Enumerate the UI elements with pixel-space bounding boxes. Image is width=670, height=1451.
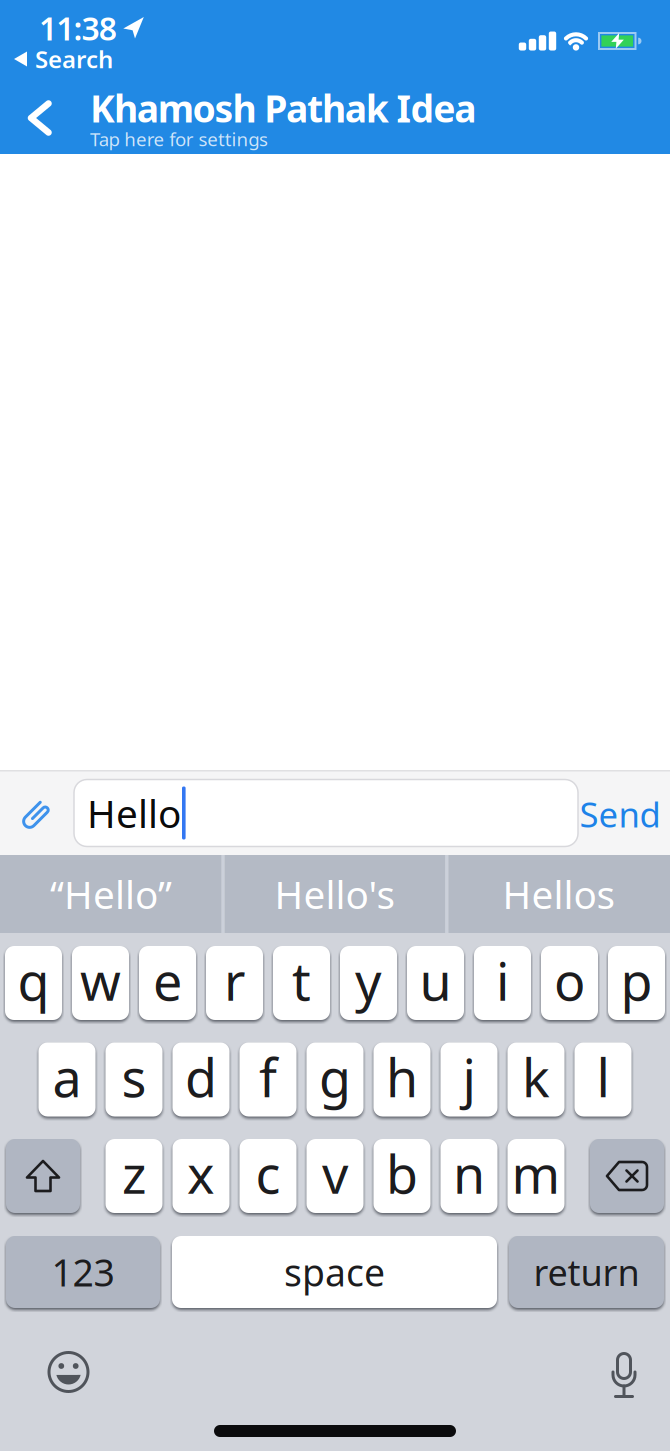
- button[interactable]: l: [574, 1042, 631, 1116]
- button[interactable]: s: [105, 1042, 162, 1116]
- button[interactable]: space: [172, 1236, 497, 1308]
- button[interactable]: [27, 100, 53, 136]
- button[interactable]: k: [507, 1042, 564, 1116]
- button[interactable]: Hello's: [224, 855, 446, 933]
- staticText: b: [386, 1139, 418, 1208]
- button[interactable]: z: [105, 1139, 162, 1213]
- staticText: y: [355, 946, 382, 1015]
- staticText: s: [121, 1042, 146, 1112]
- staticText: 11:38: [39, 7, 117, 49]
- staticText: space: [284, 1247, 385, 1297]
- button[interactable]: b: [373, 1139, 430, 1213]
- button[interactable]: [6, 1139, 80, 1213]
- button[interactable]: w: [72, 946, 129, 1020]
- button[interactable]: q: [5, 946, 62, 1020]
- button[interactable]: d: [172, 1042, 229, 1116]
- button[interactable]: g: [306, 1042, 363, 1116]
- button[interactable]: [607, 1352, 641, 1400]
- staticText: p: [620, 946, 652, 1015]
- staticText: d: [185, 1042, 217, 1112]
- button[interactable]: h: [373, 1042, 430, 1116]
- staticText: k: [522, 1042, 550, 1112]
- staticText: Khamosh Pathak Idea: [90, 83, 476, 133]
- staticText: a: [52, 1042, 81, 1112]
- button[interactable]: c: [239, 1139, 296, 1213]
- staticText: m: [511, 1139, 560, 1208]
- button[interactable]: Send: [579, 791, 660, 837]
- button[interactable]: v: [306, 1139, 363, 1213]
- staticText: e: [153, 946, 182, 1015]
- staticText: return: [533, 1248, 639, 1296]
- button[interactable]: x: [172, 1139, 229, 1213]
- staticText: “Hello”: [50, 868, 172, 920]
- staticText: z: [122, 1139, 146, 1208]
- staticText: x: [187, 1139, 215, 1208]
- staticText: g: [319, 1042, 351, 1112]
- button[interactable]: Hello: [74, 779, 578, 846]
- staticText: Tap here for settings: [90, 127, 268, 151]
- button[interactable]: a: [38, 1042, 95, 1116]
- staticText: Hello's: [274, 868, 395, 920]
- staticText: t: [292, 946, 311, 1015]
- button[interactable]: n: [440, 1139, 497, 1213]
- button[interactable]: Search: [0, 46, 670, 72]
- button[interactable]: “Hello”: [0, 855, 222, 933]
- button[interactable]: r: [206, 946, 263, 1020]
- button[interactable]: Khamosh Pathak Idea: [0, 87, 670, 129]
- button[interactable]: 123: [6, 1236, 160, 1308]
- button[interactable]: [14, 793, 58, 837]
- staticText: c: [255, 1139, 280, 1208]
- staticText: j: [462, 1042, 475, 1112]
- button[interactable]: j: [440, 1042, 497, 1116]
- button[interactable]: i: [474, 946, 531, 1020]
- staticText: Search: [35, 43, 113, 75]
- staticText: Send: [579, 791, 660, 837]
- staticText: u: [419, 946, 451, 1015]
- button[interactable]: p: [608, 946, 665, 1020]
- staticText: i: [496, 946, 509, 1015]
- staticText: w: [80, 946, 121, 1015]
- staticText: q: [17, 946, 49, 1015]
- button[interactable]: y: [340, 946, 397, 1020]
- staticText: 123: [51, 1247, 114, 1297]
- button[interactable]: t: [273, 946, 330, 1020]
- staticText: r: [224, 946, 245, 1015]
- button[interactable]: Hellos: [448, 855, 670, 933]
- staticText: f: [259, 1042, 277, 1112]
- button[interactable]: [46, 1350, 90, 1394]
- staticText: o: [554, 946, 585, 1015]
- staticText: l: [596, 1042, 609, 1112]
- staticText: Hello: [87, 787, 181, 839]
- staticText: n: [453, 1139, 485, 1208]
- button[interactable]: m: [507, 1139, 564, 1213]
- staticText: v: [322, 1139, 348, 1208]
- button[interactable]: f: [239, 1042, 296, 1116]
- button[interactable]: o: [541, 946, 598, 1020]
- staticText: h: [386, 1042, 418, 1112]
- button[interactable]: return: [509, 1236, 664, 1308]
- button[interactable]: e: [139, 946, 196, 1020]
- staticText: Hellos: [503, 868, 616, 920]
- button[interactable]: [590, 1139, 664, 1213]
- button[interactable]: u: [407, 946, 464, 1020]
